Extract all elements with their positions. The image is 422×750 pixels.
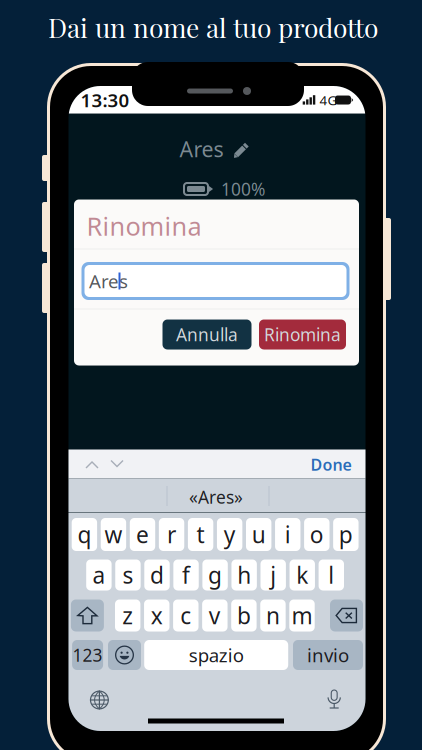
button[interactable]: m <box>289 599 315 631</box>
staticText: a <box>92 560 105 590</box>
button[interactable]: Rinomina <box>259 319 346 349</box>
button[interactable]: e <box>130 518 155 551</box>
staticText: g <box>208 560 222 590</box>
staticText: e <box>136 519 149 549</box>
staticText: Rinomina <box>86 209 201 243</box>
staticText: 4G <box>319 91 337 109</box>
staticText: d <box>150 560 164 590</box>
button[interactable]: q <box>72 518 97 551</box>
button[interactable]: b <box>231 599 257 631</box>
button[interactable]: u <box>246 518 271 551</box>
button[interactable]: s <box>115 559 141 590</box>
button[interactable]: v <box>202 599 228 631</box>
button[interactable]: a <box>86 559 112 590</box>
button[interactable]: i <box>275 518 300 551</box>
button[interactable]: w <box>101 518 126 551</box>
button[interactable]: Done <box>299 455 351 473</box>
button[interactable]: Change keyboard <box>90 690 109 709</box>
staticText: y <box>224 519 236 549</box>
staticText: Done <box>310 454 351 475</box>
staticText: q <box>77 519 91 549</box>
staticText: t <box>197 519 205 549</box>
button[interactable] <box>71 599 104 631</box>
button[interactable]: j <box>260 559 286 590</box>
button[interactable]: k <box>290 559 315 590</box>
button[interactable]: Annulla <box>162 319 251 349</box>
button[interactable]: Emoji <box>108 640 141 670</box>
staticText: m <box>291 600 312 630</box>
button[interactable]: z <box>115 599 140 631</box>
staticText: Annulla <box>176 323 238 346</box>
button[interactable]: n <box>260 599 286 631</box>
button[interactable]: «Ares» <box>166 486 266 508</box>
staticText: 100% <box>221 177 265 200</box>
staticText: n <box>266 600 280 630</box>
button[interactable]: h <box>231 559 257 590</box>
button[interactable]: x <box>144 599 169 631</box>
staticText: x <box>151 600 163 630</box>
button[interactable] <box>330 599 363 631</box>
button[interactable]: t <box>188 518 213 551</box>
button[interactable]: spazio <box>144 640 288 670</box>
button[interactable]: invio <box>293 640 363 670</box>
staticText: w <box>104 519 122 549</box>
staticText: j <box>270 560 276 590</box>
staticText: Dai un nome al tuo prodotto <box>48 9 378 45</box>
staticText: Ares <box>89 269 128 293</box>
button[interactable]: c <box>173 599 198 631</box>
button[interactable]: d <box>144 559 170 590</box>
staticText: v <box>209 600 221 630</box>
staticText: f <box>182 560 190 590</box>
staticText: Rinomina <box>264 323 341 346</box>
staticText: h <box>237 560 251 590</box>
staticText: s <box>122 560 133 590</box>
staticText: 123 <box>73 643 103 666</box>
button[interactable]: y <box>217 518 242 551</box>
staticText: p <box>339 519 353 549</box>
button[interactable]: f <box>173 559 199 590</box>
button[interactable]: l <box>319 559 344 590</box>
staticText: o <box>310 519 324 549</box>
button[interactable]: 123 <box>72 640 103 670</box>
staticText: z <box>122 600 133 630</box>
staticText: Ares <box>179 135 223 163</box>
staticText: l <box>328 560 334 590</box>
button[interactable]: g <box>202 559 228 590</box>
staticText: u <box>252 519 266 549</box>
staticText: «Ares» <box>189 485 243 508</box>
staticText: k <box>296 560 308 590</box>
staticText: 13:30 <box>80 88 129 112</box>
staticText: r <box>167 519 176 549</box>
button[interactable]: p <box>333 518 359 551</box>
button[interactable]: r <box>159 518 184 551</box>
staticText: spazio <box>189 643 244 667</box>
button[interactable]: Dictation <box>327 689 342 709</box>
staticText: b <box>237 600 251 630</box>
staticText: i <box>285 519 291 549</box>
staticText: c <box>180 600 191 630</box>
staticText: invio <box>307 643 349 667</box>
button[interactable]: o <box>304 518 329 551</box>
